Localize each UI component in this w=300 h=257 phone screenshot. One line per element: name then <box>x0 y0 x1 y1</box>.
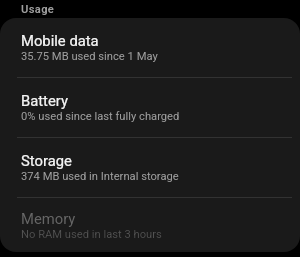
button[interactable]: Storage <box>0 138 300 198</box>
staticText: 35.75 MB used since 1 May <box>21 50 158 63</box>
staticText: 374 MB used in Internal storage <box>21 170 179 183</box>
staticText: No RAM used in last 3 hours <box>21 228 162 241</box>
staticText: Mobile data <box>21 32 99 49</box>
button[interactable]: Memory <box>0 198 300 252</box>
staticText: Storage <box>21 152 72 169</box>
button[interactable]: Battery <box>0 78 300 138</box>
staticText: Memory <box>21 210 76 227</box>
staticText: Usage <box>21 3 55 16</box>
button[interactable]: Mobile data <box>0 18 300 78</box>
staticText: 0% used since last fully charged <box>21 110 180 123</box>
staticText: Battery <box>21 92 68 109</box>
